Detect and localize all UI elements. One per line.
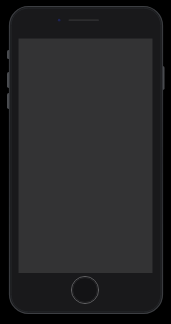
button[interactable]: Phone device mockup bbox=[0, 0, 171, 324]
